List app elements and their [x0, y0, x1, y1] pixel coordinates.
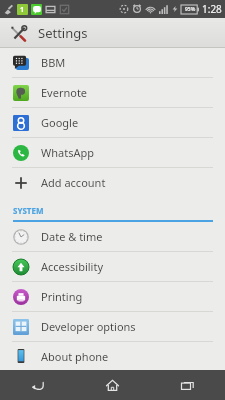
staticText: 1 — [20, 5, 25, 15]
staticText: SYSTEM — [13, 205, 44, 216]
button[interactable]: Back — [0, 370, 75, 400]
button[interactable]: Recent apps — [150, 370, 225, 400]
button[interactable]: Google — [0, 108, 225, 137]
staticText: BBM — [41, 55, 66, 70]
button[interactable]: Accessibility — [0, 252, 225, 281]
button[interactable]: About phone — [0, 342, 225, 370]
button[interactable]: Add account — [0, 168, 225, 197]
staticText: 1:28 — [202, 2, 222, 16]
staticText: Evernote — [41, 85, 88, 100]
button[interactable]: Home — [75, 370, 150, 400]
button[interactable]: WhatsApp — [0, 138, 225, 167]
button[interactable]: Evernote — [0, 78, 225, 107]
button[interactable]: BBM — [0, 48, 225, 77]
staticText: About phone — [41, 349, 109, 364]
button[interactable]: Developer options — [0, 312, 225, 341]
button[interactable]: Printing — [0, 282, 225, 311]
staticText: Date & time — [41, 229, 103, 244]
staticText: WhatsApp — [41, 145, 94, 160]
staticText: Google — [41, 115, 79, 130]
staticText: 95% — [185, 6, 196, 13]
staticText: Printing — [41, 289, 83, 304]
staticText: Add account — [41, 175, 106, 190]
staticText: Developer options — [41, 319, 136, 334]
button[interactable]: Date & time — [0, 222, 225, 251]
staticText: Accessibility — [41, 259, 104, 274]
staticText: Settings — [38, 24, 88, 42]
